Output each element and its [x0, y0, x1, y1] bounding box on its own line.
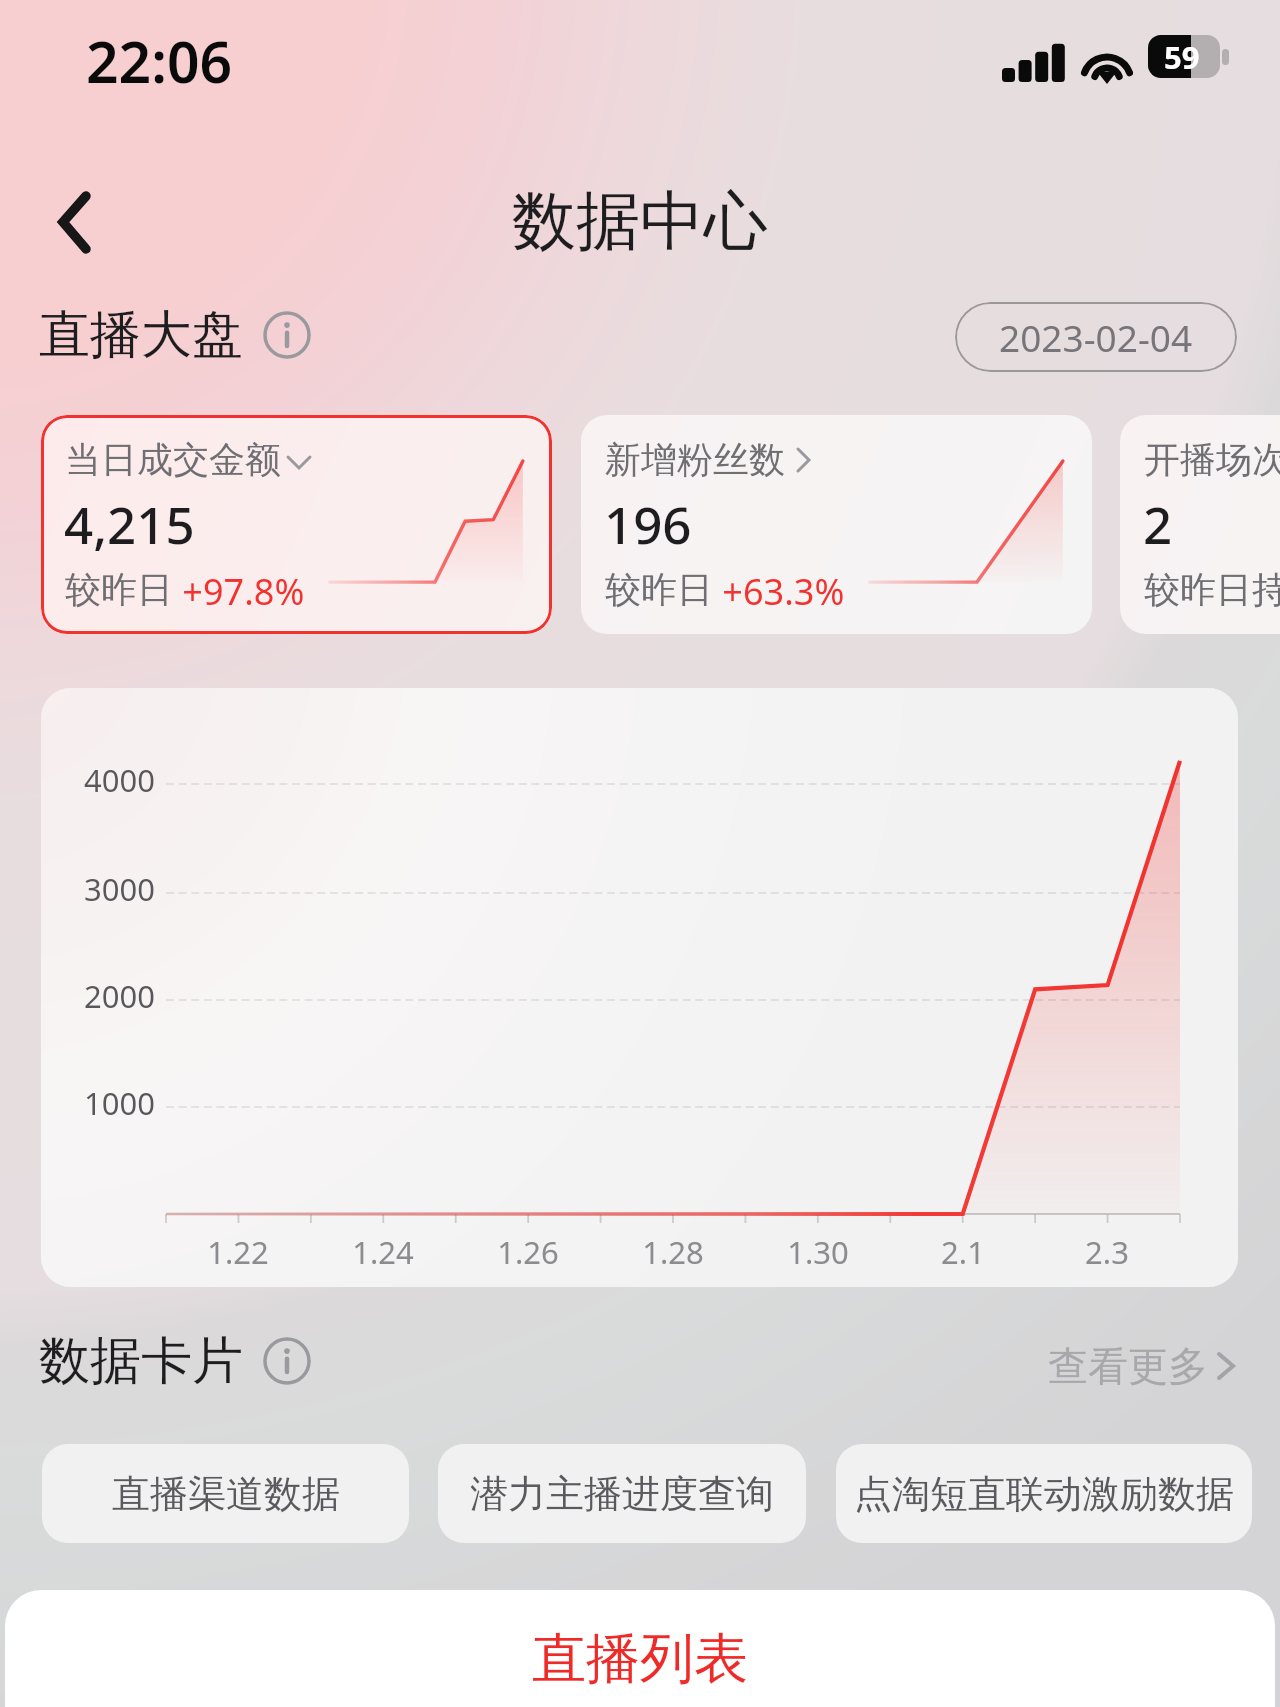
staticText: 当日成交金额	[65, 437, 281, 482]
button[interactable]: 新增粉丝数	[581, 415, 1092, 634]
button[interactable]: 查看更多	[1048, 1341, 1246, 1391]
button[interactable]: Back	[32, 176, 122, 266]
staticText: 较昨日持	[1144, 567, 1280, 612]
button[interactable]: 开播场次	[1120, 415, 1280, 634]
staticText: 查看更多	[1048, 1341, 1208, 1391]
staticText: 2.1	[903, 1231, 1023, 1273]
staticText: 196	[604, 489, 692, 558]
staticText: 直播列表	[532, 1625, 748, 1693]
staticText: 2.3	[1047, 1231, 1167, 1273]
staticText: 2000	[41, 975, 155, 1017]
button[interactable]: 点淘短直联动激励数据	[836, 1444, 1252, 1543]
staticText: 直播大盘	[39, 303, 243, 367]
staticText: 数据卡片	[39, 1329, 243, 1393]
staticText: 59	[1164, 36, 1200, 78]
staticText: 1.22	[178, 1231, 298, 1273]
button[interactable]: Info	[263, 1337, 311, 1385]
staticText: 3000	[41, 868, 155, 910]
staticText: +63.3%	[713, 567, 845, 616]
staticText: +97.8%	[173, 567, 305, 616]
staticText: 2023-02-04	[999, 312, 1193, 362]
staticText: 较昨日	[605, 567, 713, 612]
staticText: 1.30	[758, 1231, 878, 1273]
button[interactable]: 直播列表	[5, 1590, 1275, 1707]
staticText: 1.28	[613, 1231, 733, 1273]
staticText: 较昨日	[65, 567, 173, 612]
staticText: 4,215	[64, 489, 195, 558]
staticText: 1.24	[323, 1231, 443, 1273]
staticText: 数据中心	[512, 181, 768, 262]
button[interactable]: 当日成交金额	[41, 415, 552, 634]
button[interactable]: 2023-02-04	[955, 302, 1237, 372]
staticText: 新增粉丝数	[605, 437, 785, 482]
staticText: 22:06	[86, 22, 233, 100]
staticText: 潜力主播进度查询	[470, 1470, 774, 1518]
staticText: 点淘短直联动激励数据	[854, 1470, 1234, 1518]
button[interactable]: Info	[263, 311, 311, 359]
staticText: 1.26	[468, 1231, 588, 1273]
staticText: 2	[1143, 489, 1173, 558]
button[interactable]: 潜力主播进度查询	[438, 1444, 806, 1543]
button[interactable]: 直播渠道数据	[42, 1444, 409, 1543]
staticText: 1000	[41, 1082, 155, 1124]
staticText: 开播场次	[1144, 437, 1280, 482]
staticText: 4000	[41, 759, 155, 801]
staticText: 直播渠道数据	[112, 1470, 340, 1518]
